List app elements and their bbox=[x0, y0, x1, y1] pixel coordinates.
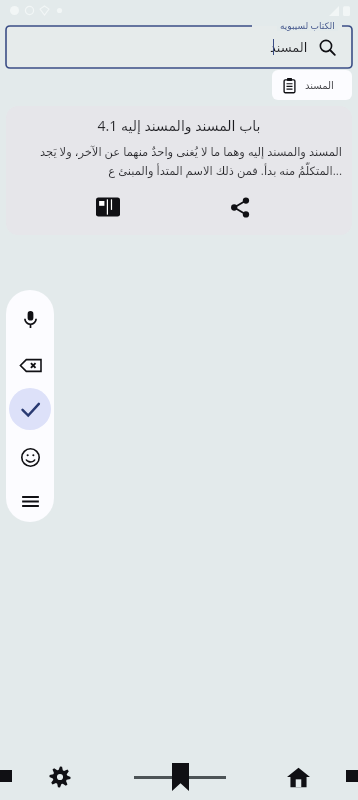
button[interactable]: Confirm bbox=[9, 388, 51, 430]
button[interactable]: 4.1 باب المسند والمسند إليه bbox=[6, 106, 352, 235]
button[interactable]: Backspace bbox=[7, 342, 53, 388]
staticText: الكتاب لسيبويه bbox=[280, 19, 335, 31]
staticText: المسند bbox=[270, 40, 308, 55]
button[interactable] bbox=[6, 26, 352, 68]
button[interactable]: Home bbox=[239, 754, 358, 800]
staticText: المسند bbox=[305, 80, 334, 92]
button[interactable]: Open book bbox=[90, 189, 126, 225]
button[interactable]: Emoji bbox=[7, 434, 53, 480]
button[interactable]: Bookmarks bbox=[120, 754, 239, 800]
button[interactable]: Voice input bbox=[7, 296, 53, 342]
button[interactable]: Menu bbox=[7, 480, 53, 522]
button[interactable]: Share bbox=[222, 189, 258, 225]
button[interactable]: Settings bbox=[0, 754, 120, 800]
button[interactable]: Search bbox=[310, 30, 344, 64]
staticText: 4.1 باب المسند والمسند إليه bbox=[16, 116, 342, 135]
button[interactable]: المسند bbox=[272, 70, 352, 100]
staticText: المسند والمسند إليه وهما ما لا يُغنى واح… bbox=[16, 144, 342, 179]
